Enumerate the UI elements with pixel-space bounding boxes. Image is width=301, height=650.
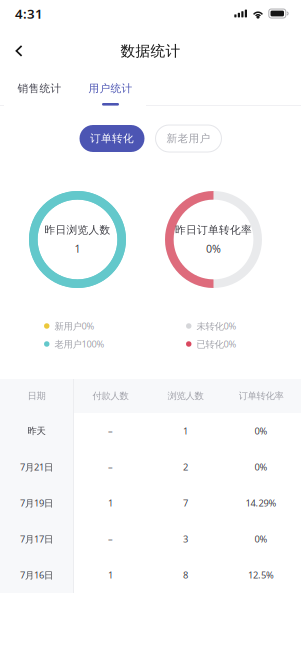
staticText: 浏览人数 (167, 390, 203, 402)
button[interactable]: 销售统计 (4, 75, 75, 106)
staticText: 8 (183, 569, 188, 581)
staticText: 昨日订单转化率 (175, 223, 252, 236)
staticText: 日期 (27, 390, 45, 402)
staticText: 0% (254, 533, 267, 545)
staticText: 订单转化 (90, 132, 134, 145)
staticText: 1 (183, 425, 188, 437)
staticText: – (108, 461, 113, 473)
staticText: 昨天 (27, 425, 45, 437)
button[interactable]: 返回 (0, 36, 36, 66)
staticText: 1 (108, 569, 113, 581)
staticText: – (108, 533, 113, 545)
staticText: 2 (183, 461, 188, 473)
button[interactable]: 订单转化 (79, 125, 144, 152)
staticText: 0% (254, 425, 267, 437)
staticText: 1 (74, 241, 80, 256)
staticText: 0% (206, 241, 221, 256)
staticText: 1 (108, 497, 113, 509)
staticText: 付款人数 (92, 390, 128, 402)
staticText: 用户统计 (88, 82, 132, 95)
staticText: 数据统计 (120, 42, 180, 60)
staticText: 7月21日 (20, 461, 53, 473)
staticText: 7月19日 (20, 497, 53, 509)
staticText: 7 (183, 497, 188, 509)
button[interactable]: 用户统计 (75, 75, 146, 106)
button[interactable]: 新老用户 (155, 125, 221, 152)
staticText: 7月17日 (20, 533, 53, 545)
staticText: 订单转化率 (238, 390, 283, 402)
staticText: 12.5% (248, 569, 274, 581)
staticText: 新老用户 (166, 132, 210, 145)
staticText: 老用户100% (54, 338, 104, 350)
staticText: 14.29% (245, 497, 276, 509)
staticText: – (108, 425, 113, 437)
staticText: 销售统计 (17, 82, 61, 95)
staticText: 7月16日 (20, 569, 53, 581)
staticText: 未转化0% (196, 320, 236, 332)
staticText: 新用户0% (54, 320, 94, 332)
staticText: 已转化0% (196, 338, 236, 350)
staticText: 3 (183, 533, 188, 545)
staticText: 4:31 (15, 5, 43, 22)
staticText: 昨日浏览人数 (44, 223, 110, 236)
staticText: 0% (254, 461, 267, 473)
